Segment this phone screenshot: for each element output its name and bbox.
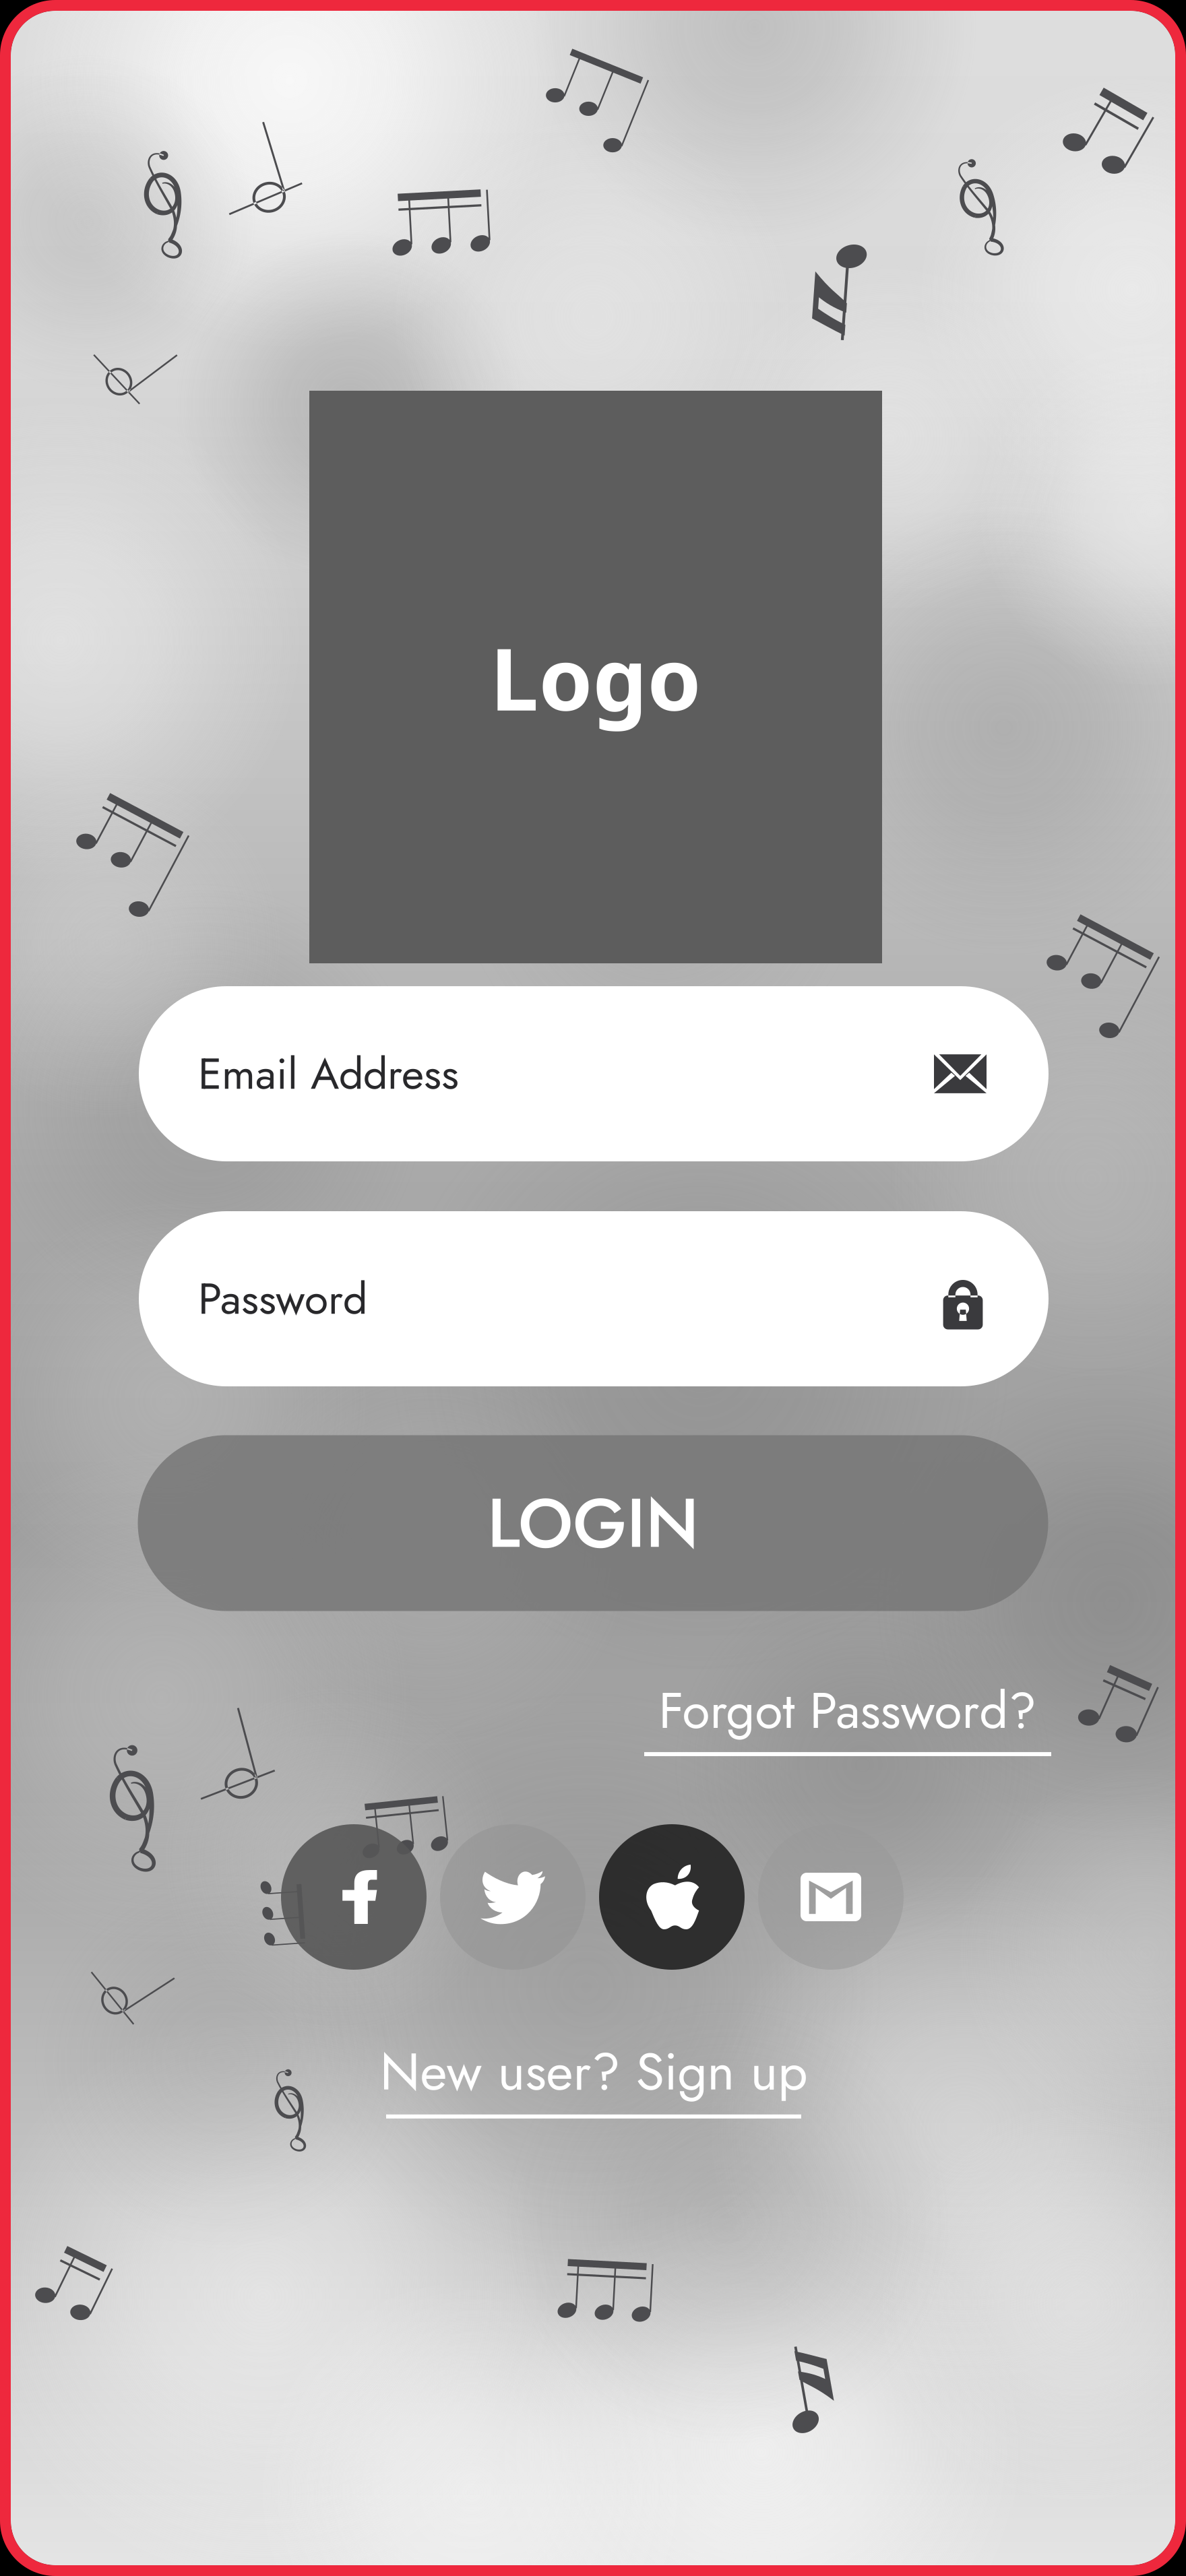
button[interactable]: New user? Sign up xyxy=(380,2034,808,2118)
staticText: Password xyxy=(198,1268,367,1330)
staticText: New user? Sign up xyxy=(380,2034,808,2109)
button[interactable]: Forgot Password? xyxy=(644,1674,1051,1756)
staticText: LOGIN xyxy=(487,1474,699,1572)
button[interactable]: LOGIN xyxy=(138,1435,1048,1611)
button[interactable]: Sign in with Google xyxy=(758,1824,904,1970)
staticText: Forgot Password? xyxy=(659,1674,1037,1747)
staticText: Email Address xyxy=(198,1043,459,1105)
staticText: Logo xyxy=(490,620,701,734)
button[interactable]: Sign in with Facebook xyxy=(281,1824,427,1970)
button[interactable]: Sign in with Twitter xyxy=(440,1824,586,1970)
button[interactable]: Password xyxy=(139,1211,1049,1386)
button[interactable]: Email Address xyxy=(139,986,1049,1161)
button[interactable]: Sign in with Apple xyxy=(599,1824,745,1970)
